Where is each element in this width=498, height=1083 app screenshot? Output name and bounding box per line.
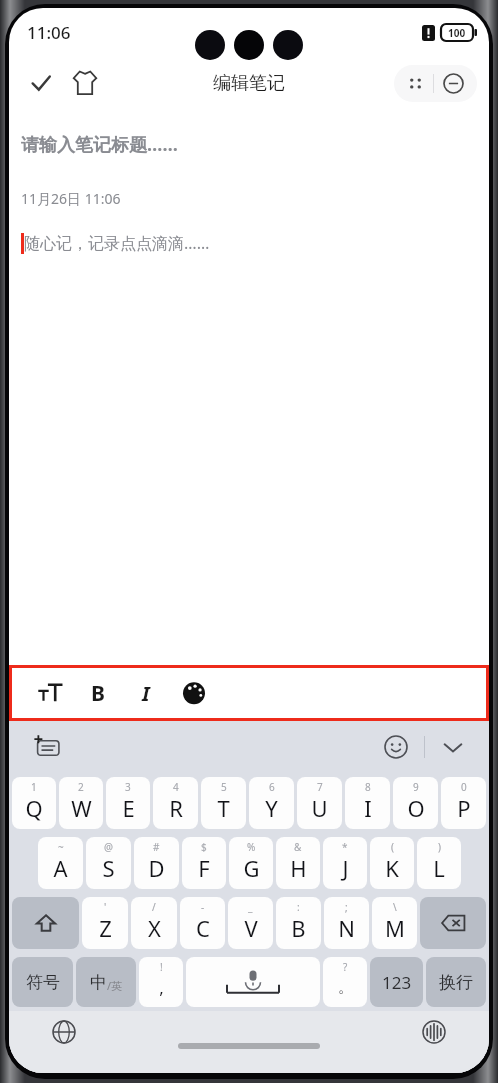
staticText: W [71, 793, 92, 823]
button[interactable]: ~ [38, 837, 83, 889]
staticText: # [153, 840, 160, 854]
staticText: 换行 [439, 972, 473, 993]
button[interactable]: 5 [201, 777, 246, 829]
staticText: \ [393, 900, 397, 914]
staticText: V [244, 913, 258, 943]
staticText: 100 [448, 26, 466, 40]
staticText: 6 [269, 780, 275, 794]
button[interactable]: Bold [74, 669, 122, 717]
staticText: ) [438, 840, 441, 854]
button[interactable]: 3 [106, 777, 150, 829]
button[interactable]: Voice input [419, 1017, 449, 1047]
button[interactable]: 8 [345, 777, 390, 829]
staticText: J [342, 853, 349, 883]
staticText: * [342, 840, 348, 854]
button[interactable]: ? [323, 957, 367, 1007]
staticText: Q [25, 793, 43, 823]
button[interactable]: AI input [31, 730, 65, 764]
staticText: 1 [31, 780, 37, 794]
staticText: D [148, 853, 165, 883]
staticText: 随心记，记录点点滴滴…… [24, 232, 210, 254]
staticText: 8 [365, 780, 371, 794]
staticText: 。 [338, 978, 353, 997]
staticText: S [102, 853, 115, 883]
staticText: $ [201, 840, 207, 854]
button[interactable]: _ [228, 897, 273, 949]
staticText: 123 [382, 971, 412, 994]
staticText: 7 [317, 780, 323, 794]
staticText: ! [160, 960, 163, 974]
button[interactable]: Italic [122, 669, 170, 717]
button[interactable]: Shift [12, 897, 79, 949]
staticText: 请输入笔记标题…… [21, 132, 178, 157]
button[interactable]: $ [182, 837, 226, 889]
staticText: 4 [173, 780, 179, 794]
button[interactable]: # [134, 837, 179, 889]
button[interactable]: * [323, 837, 367, 889]
staticText: 中 [90, 972, 107, 993]
staticText: L [433, 853, 445, 883]
button[interactable]: Backspace [420, 897, 486, 949]
button[interactable]: 9 [393, 777, 438, 829]
staticText: I [364, 793, 372, 823]
button[interactable]: 123 [370, 957, 423, 1007]
button[interactable]: Space [186, 957, 320, 1007]
button[interactable]: Emoji [378, 729, 414, 765]
staticText: ? [343, 960, 348, 974]
button[interactable]: & [276, 837, 320, 889]
staticText: : [297, 900, 300, 914]
button[interactable]: : [276, 897, 321, 949]
button[interactable]: 6 [249, 777, 294, 829]
staticText: G [243, 853, 260, 883]
staticText: P [457, 793, 471, 823]
button[interactable]: 7 [297, 777, 342, 829]
staticText: F [198, 853, 210, 883]
staticText: E [122, 793, 135, 823]
button[interactable]: 换行 [426, 957, 486, 1007]
button[interactable]: Text size [26, 669, 74, 717]
staticText: B [91, 679, 105, 708]
button[interactable]: ) [417, 837, 461, 889]
button[interactable]: - [180, 897, 225, 949]
staticText: Z [99, 913, 112, 943]
button[interactable]: More options [394, 65, 477, 102]
staticText: / [152, 900, 156, 914]
button[interactable]: Color [170, 669, 218, 717]
staticText: ; [345, 900, 348, 914]
button[interactable]: Hide keyboard [435, 729, 471, 765]
staticText: ' [104, 900, 107, 914]
button[interactable]: \ [372, 897, 417, 949]
staticText: 11月26日 11:06 [21, 189, 121, 208]
staticText: O [407, 793, 425, 823]
staticText: ~ [58, 840, 64, 854]
staticText: M [385, 913, 405, 943]
staticText: B [291, 913, 306, 943]
button[interactable]: % [229, 837, 273, 889]
staticText: @ [104, 840, 113, 854]
button[interactable]: 符号 [12, 957, 73, 1007]
staticText: /英 [107, 978, 123, 993]
staticText: H [290, 853, 307, 883]
button[interactable]: / [131, 897, 177, 949]
button[interactable]: ; [324, 897, 369, 949]
button[interactable]: Change language [49, 1017, 79, 1047]
staticText: 11:06 [27, 21, 71, 44]
button[interactable]: ' [82, 897, 128, 949]
button[interactable]: ! [139, 957, 183, 1007]
staticText: & [294, 840, 302, 854]
button[interactable]: 4 [153, 777, 198, 829]
button[interactable]: Done [19, 61, 63, 105]
staticText: - [201, 900, 205, 914]
button[interactable]: 2 [59, 777, 103, 829]
button[interactable]: @ [86, 837, 131, 889]
staticText: _ [248, 900, 253, 914]
button[interactable]: 1 [12, 777, 56, 829]
staticText: ( [391, 840, 394, 854]
staticText: T [217, 793, 230, 823]
button[interactable]: 中 [76, 957, 136, 1007]
staticText: U [311, 793, 328, 823]
button[interactable]: 0 [441, 777, 486, 829]
button[interactable]: Style [63, 61, 107, 105]
button[interactable]: ( [370, 837, 414, 889]
staticText: , [159, 976, 164, 999]
